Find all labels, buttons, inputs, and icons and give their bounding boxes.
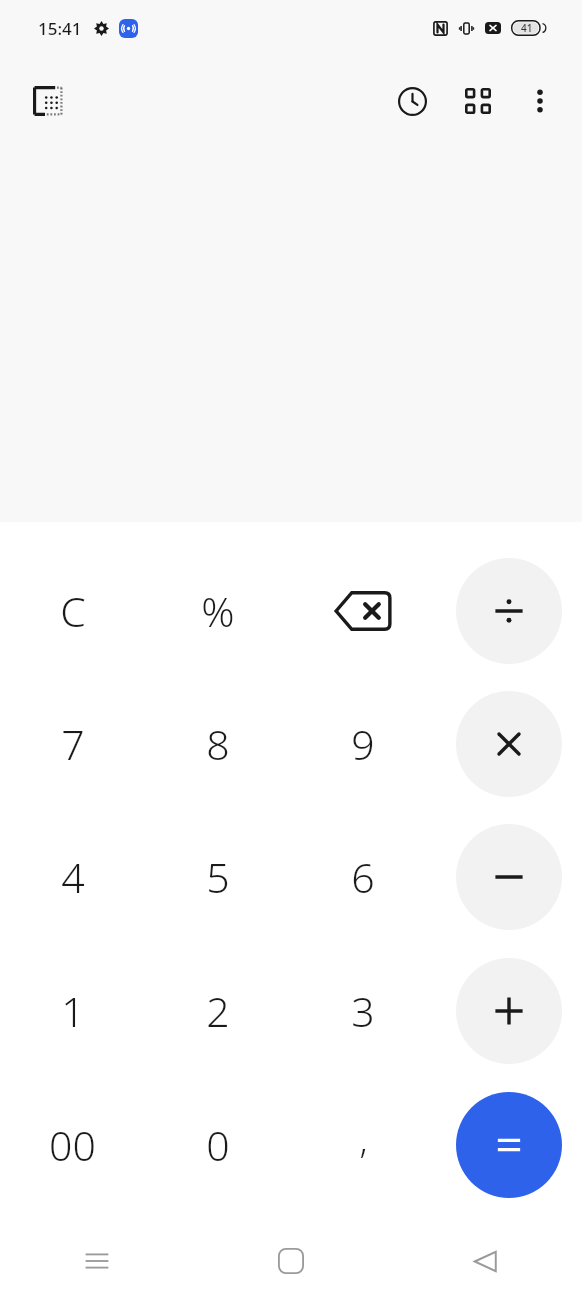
staticText: 9 <box>351 716 375 772</box>
staticText: , <box>359 1115 368 1164</box>
button[interactable]: 4 <box>0 810 145 944</box>
staticText: 3 <box>351 983 375 1039</box>
button[interactable]: Home <box>194 1222 388 1300</box>
button[interactable]: 7 <box>0 677 145 810</box>
staticText: 41 <box>521 21 533 35</box>
button[interactable]: Add <box>456 958 562 1064</box>
button[interactable]: Recent apps <box>0 1222 194 1300</box>
staticText: C <box>60 583 86 639</box>
button[interactable]: 00 <box>0 1078 145 1212</box>
button[interactable]: Equals <box>456 1092 562 1198</box>
button[interactable]: Divide <box>456 558 562 664</box>
button[interactable]: Backspace <box>290 544 436 677</box>
button[interactable]: 5 <box>145 810 290 944</box>
button[interactable]: Back <box>388 1222 582 1300</box>
button[interactable]: Screenshot region <box>22 75 74 127</box>
staticText: % <box>201 583 235 639</box>
staticText: 1 <box>61 983 85 1039</box>
button[interactable]: , <box>290 1078 436 1212</box>
button[interactable]: Multiply <box>456 691 562 797</box>
button[interactable]: 6 <box>290 810 436 944</box>
button[interactable]: C <box>0 544 145 677</box>
button[interactable]: More options <box>514 75 566 127</box>
button[interactable]: 3 <box>290 944 436 1078</box>
staticText: 8 <box>206 716 230 772</box>
button[interactable]: 1 <box>0 944 145 1078</box>
staticText: 5 <box>206 849 230 905</box>
button[interactable]: Unit converter <box>452 75 504 127</box>
staticText: 6 <box>351 849 375 905</box>
button[interactable]: 8 <box>145 677 290 810</box>
staticText: 15:41 <box>38 17 82 40</box>
button[interactable]: History <box>386 75 438 127</box>
staticText: 00 <box>49 1117 96 1173</box>
button[interactable]: 2 <box>145 944 290 1078</box>
staticText: 0 <box>206 1117 230 1173</box>
button[interactable]: 9 <box>290 677 436 810</box>
staticText: 7 <box>61 716 85 772</box>
button[interactable]: 0 <box>145 1078 290 1212</box>
staticText: 4 <box>61 849 85 905</box>
staticText: 2 <box>206 983 230 1039</box>
button[interactable]: Subtract <box>456 824 562 930</box>
button[interactable]: % <box>145 544 290 677</box>
